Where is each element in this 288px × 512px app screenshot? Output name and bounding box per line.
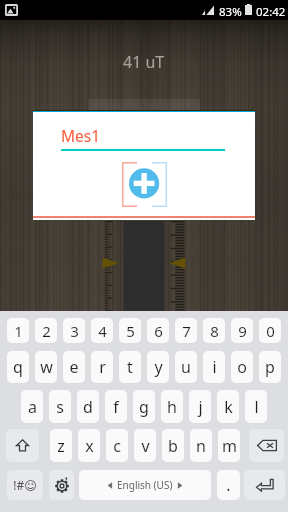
staticText: t [127,356,133,378]
staticText: !#☺ [13,477,37,493]
button[interactable]: 3 [63,318,85,343]
staticText: . [226,474,231,496]
staticText: m [222,435,237,457]
staticText: Mes1 [61,125,101,146]
button[interactable]: 6 [147,318,169,343]
button[interactable]: n [190,429,212,462]
button[interactable]: t [119,351,141,383]
other: Enter [256,478,274,492]
staticText: p [265,356,275,378]
button[interactable]: 5 [119,318,141,343]
staticText: 02:42 [256,4,286,20]
button[interactable]: 0 [259,318,281,343]
staticText: 41 uT [123,51,165,73]
button[interactable]: r [91,351,113,383]
staticText: i [212,356,217,378]
staticText: 7 [182,321,191,341]
button[interactable]: . [217,470,240,500]
staticText: 2 [42,321,51,341]
staticText: s [56,396,64,418]
button[interactable]: e [63,351,85,383]
other: Shift [15,438,30,453]
button[interactable]: English (US) [79,470,211,500]
button[interactable]: c [106,429,128,462]
button[interactable]: s [49,390,71,423]
button[interactable]: w [35,351,57,383]
staticText: 3 [70,321,79,341]
button[interactable]: 9 [231,318,253,343]
button[interactable]: Settings [49,470,74,500]
staticText: h [167,396,177,418]
button[interactable]: p [259,351,281,383]
button[interactable]: a [21,390,43,423]
button[interactable]: 7 [175,318,197,343]
staticText: 4 [98,321,107,341]
button[interactable]: y [147,351,169,383]
staticText: 1 [14,321,23,341]
other: Backspace [257,439,277,452]
staticText: c [113,435,121,457]
staticText: r [99,356,106,378]
button[interactable]: o [231,351,253,383]
staticText: d [83,396,93,418]
button[interactable]: 8 [203,318,225,343]
button[interactable]: h [161,390,183,423]
staticText: x [85,435,94,457]
staticText: z [57,435,65,457]
staticText: j [198,396,203,418]
button[interactable]: j [189,390,211,423]
button[interactable]: 1 [7,318,29,343]
button[interactable]: b [162,429,184,462]
button[interactable]: f [105,390,127,423]
staticText: 6 [154,321,163,341]
button[interactable]: Enter [244,470,285,500]
staticText: 5 [126,321,135,341]
staticText: e [69,356,79,378]
button[interactable]: i [203,351,225,383]
staticText: u [181,356,191,378]
button[interactable]: 2 [35,318,57,343]
button[interactable]: Add measurement [122,162,167,207]
button[interactable]: Backspace [249,429,284,462]
staticText: a [28,396,37,418]
button[interactable]: Shift [6,429,39,462]
staticText: q [13,356,23,378]
other: Screenshot [5,4,18,16]
other: Settings [54,477,70,493]
button[interactable]: g [133,390,155,423]
staticText: f [113,396,119,418]
button[interactable]: m [218,429,240,462]
button[interactable]: k [217,390,239,423]
staticText: l [254,396,259,418]
staticText: 8 [210,321,219,341]
button[interactable]: 4 [91,318,113,343]
button[interactable]: v [134,429,156,462]
staticText: 9 [238,321,247,341]
staticText: o [237,356,247,378]
button[interactable]: u [175,351,197,383]
staticText: English (US) [117,478,173,492]
staticText: g [139,396,149,418]
button[interactable]: !#☺ [7,470,43,500]
staticText: v [141,435,150,457]
staticText: b [168,435,178,457]
staticText: 83% [219,4,242,20]
button[interactable]: l [245,390,267,423]
button[interactable]: d [77,390,99,423]
staticText: y [154,356,163,378]
button[interactable]: q [7,351,29,383]
staticText: 0 [266,321,275,341]
staticText: k [224,396,233,418]
staticText: n [196,435,206,457]
button[interactable]: x [78,429,100,462]
button[interactable]: z [50,429,72,462]
staticText: w [40,356,53,378]
